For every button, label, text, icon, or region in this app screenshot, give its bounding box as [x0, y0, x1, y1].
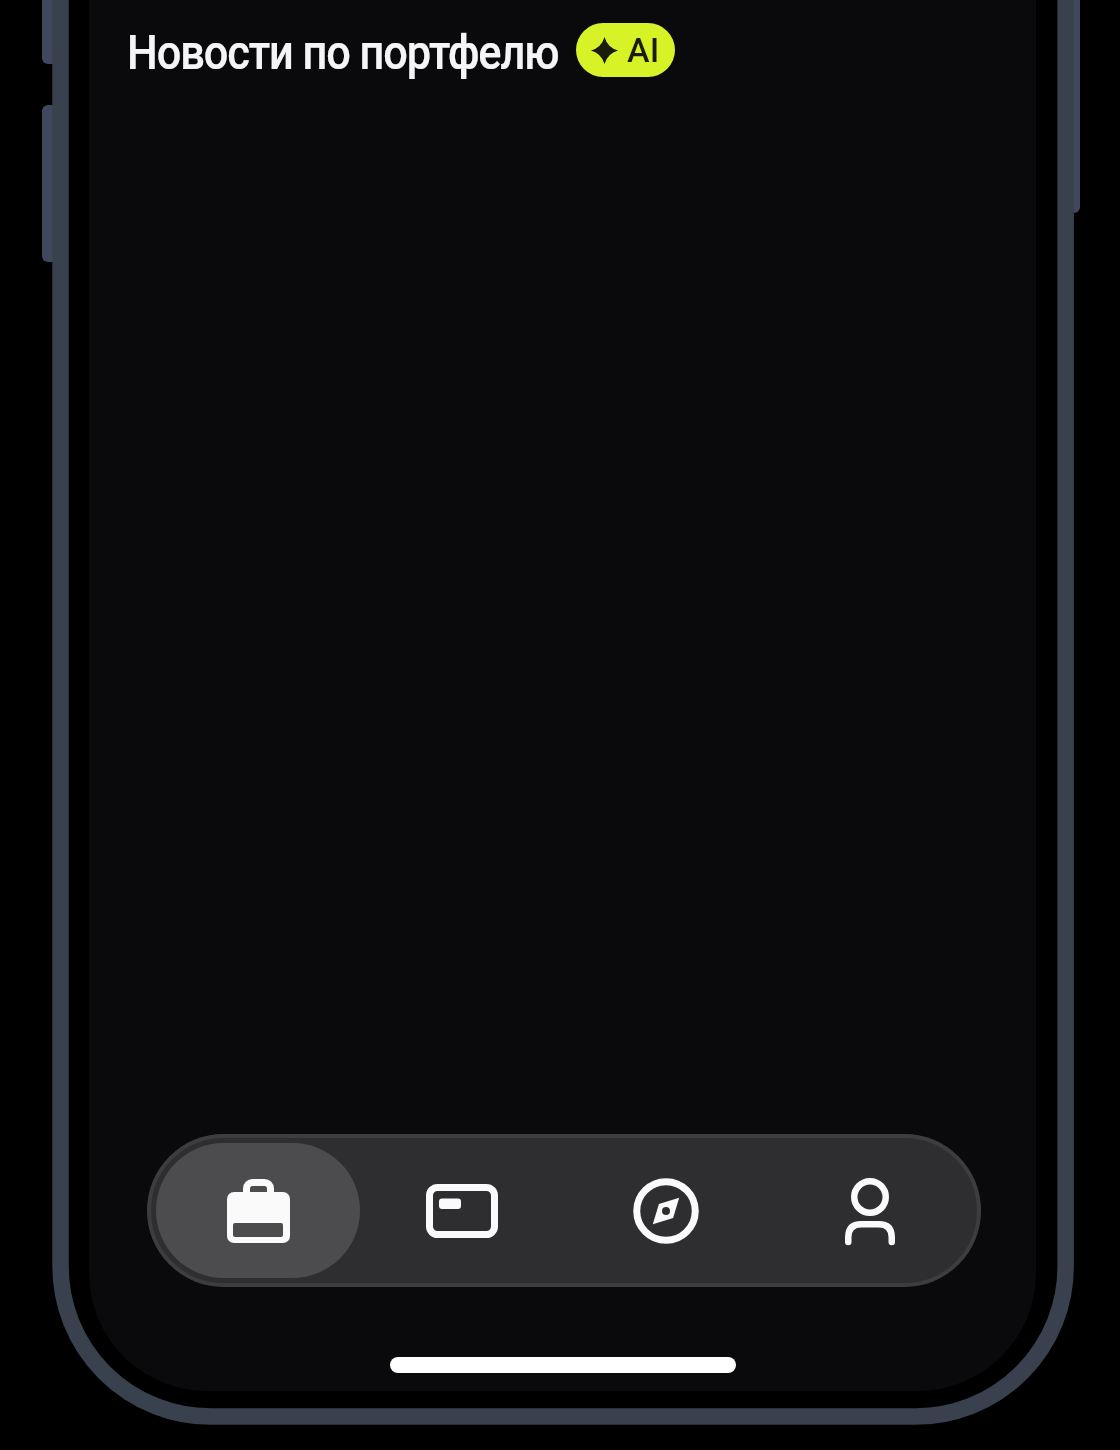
button[interactable]: AI — [576, 23, 675, 77]
staticText: Новости по портфелю — [127, 24, 559, 80]
button[interactable] — [156, 1143, 360, 1278]
staticText: AI — [627, 30, 660, 70]
button[interactable] — [360, 1143, 564, 1278]
button[interactable] — [768, 1143, 972, 1278]
button[interactable] — [564, 1143, 768, 1278]
